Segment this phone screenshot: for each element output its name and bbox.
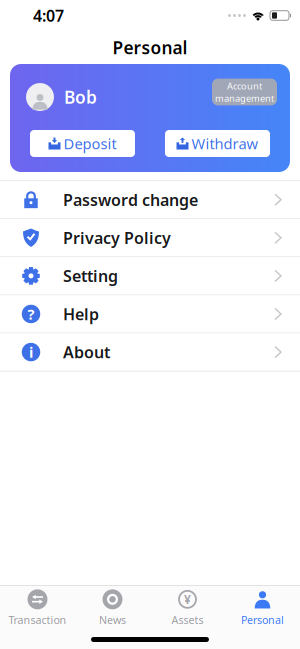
staticText: i: [29, 342, 33, 362]
button[interactable]: Account: [212, 79, 277, 105]
button[interactable]: Password change: [0, 181, 300, 218]
staticText: Withdraw: [191, 134, 258, 153]
staticText: Setting: [63, 265, 118, 286]
staticText: Help: [63, 303, 99, 324]
staticText: Personal: [241, 613, 284, 627]
staticText: ?: [27, 304, 34, 324]
button[interactable]: Privacy Policy: [0, 219, 300, 256]
staticText: 4:07: [33, 5, 64, 26]
button[interactable]: Personal: [225, 589, 300, 627]
button[interactable]: i: [0, 334, 300, 370]
button[interactable]: Setting: [0, 257, 300, 294]
staticText: Personal: [112, 36, 187, 59]
staticText: Account: [227, 80, 262, 92]
staticText: Privacy Policy: [63, 227, 171, 248]
staticText: Bob: [64, 85, 97, 108]
staticText: management: [215, 92, 274, 104]
staticText: Assets: [171, 613, 203, 627]
button[interactable]: Withdraw: [165, 130, 270, 157]
button[interactable]: ¥: [150, 589, 225, 627]
button[interactable]: Deposit: [30, 130, 135, 157]
staticText: Deposit: [63, 134, 116, 153]
button[interactable]: Transaction: [0, 589, 75, 627]
button[interactable]: ?: [0, 295, 300, 332]
button[interactable]: News: [75, 589, 150, 627]
staticText: News: [99, 613, 126, 627]
staticText: ¥: [184, 591, 191, 607]
staticText: Transaction: [8, 613, 66, 627]
staticText: Password change: [63, 189, 198, 210]
staticText: About: [63, 341, 110, 363]
